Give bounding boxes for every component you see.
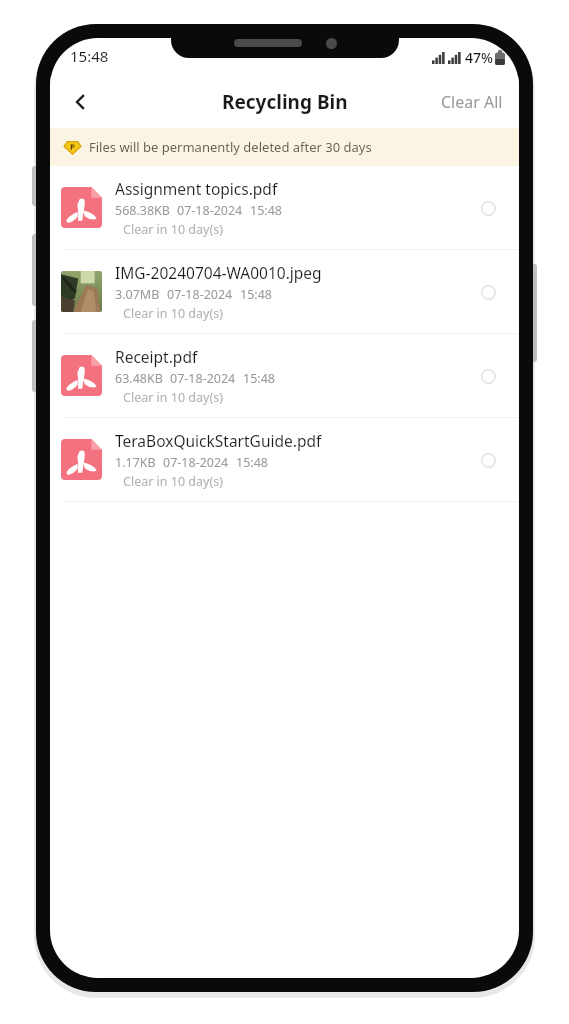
staticText: 07-18-2024 [170,370,236,387]
button[interactable]: Select file [471,359,505,393]
staticText: 1.17KB [115,454,156,471]
staticText: Clear in 10 day(s) [123,221,223,238]
staticText: 15:48 [70,46,109,66]
staticText: TeraBoxQuickStartGuide.pdf [115,430,322,451]
button[interactable]: Receipt.pdf [50,334,519,417]
staticText: 15:48 [243,370,275,387]
button[interactable]: Assignment topics.pdf [50,166,519,249]
button[interactable]: Back [60,81,102,123]
staticText: 15:48 [236,454,268,471]
button[interactable]: IMG-20240704-WA0010.jpeg [50,250,519,333]
staticText: Clear in 10 day(s) [123,473,223,490]
staticText: 3.07MB [115,286,160,303]
staticText: 15:48 [250,202,282,219]
button[interactable]: Select file [471,443,505,477]
staticText: 07-18-2024 [177,202,243,219]
staticText: Clear in 10 day(s) [123,389,223,406]
staticText: 15:48 [240,286,272,303]
button[interactable]: Select file [471,275,505,309]
staticText: Recycling Bin [222,89,348,115]
staticText: 07-18-2024 [167,286,233,303]
staticText: Clear All [441,91,503,113]
button[interactable]: Select file [471,191,505,225]
staticText: 63.48KB [115,370,163,387]
staticText: Clear in 10 day(s) [123,305,223,322]
staticText: Files will be permanently deleted after … [89,138,372,156]
button[interactable]: TeraBoxQuickStartGuide.pdf [50,418,519,501]
staticText: Receipt.pdf [115,346,198,367]
staticText: IMG-20240704-WA0010.jpeg [115,262,322,283]
staticText: Assignment topics.pdf [115,178,278,199]
staticText: 47% [465,48,493,67]
staticText: 568.38KB [115,202,170,219]
staticText: 07-18-2024 [163,454,229,471]
button[interactable]: Clear All [425,81,519,123]
